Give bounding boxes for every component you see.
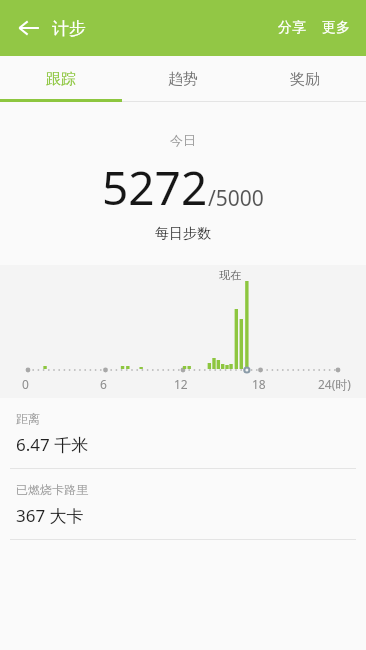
staticText: 每日步数 (155, 225, 211, 243)
button[interactable]: 分享 (270, 9, 314, 47)
button[interactable]: Back (6, 5, 52, 51)
staticText: 距离 (16, 411, 40, 426)
button[interactable]: 趋势 (122, 56, 244, 102)
staticText: 今日 (170, 132, 196, 148)
staticText: 现在 (219, 268, 241, 282)
staticText: 5272 (102, 156, 208, 219)
staticText: 12 (174, 376, 188, 392)
staticText: /5000 (208, 184, 264, 213)
staticText: 24(时) (318, 376, 351, 392)
button[interactable]: 距离 (0, 398, 366, 469)
staticText: 计步 (52, 18, 86, 39)
button[interactable]: 已燃烧卡路里 (0, 469, 366, 540)
staticText: 趋势 (168, 70, 198, 89)
staticText: 0 (22, 376, 29, 392)
staticText: 6.47 千米 (16, 433, 89, 456)
staticText: 已燃烧卡路里 (16, 482, 88, 497)
button[interactable]: 更多 (314, 9, 358, 47)
staticText: 跟踪 (46, 70, 76, 89)
staticText: 367 大卡 (16, 504, 84, 527)
staticText: 6 (100, 376, 107, 392)
button[interactable]: 奖励 (244, 56, 366, 102)
button[interactable]: 跟踪 (0, 56, 122, 102)
staticText: 奖励 (290, 70, 320, 89)
staticText: 18 (252, 376, 266, 392)
staticText: 分享 (278, 19, 306, 37)
staticText: 更多 (322, 19, 350, 37)
